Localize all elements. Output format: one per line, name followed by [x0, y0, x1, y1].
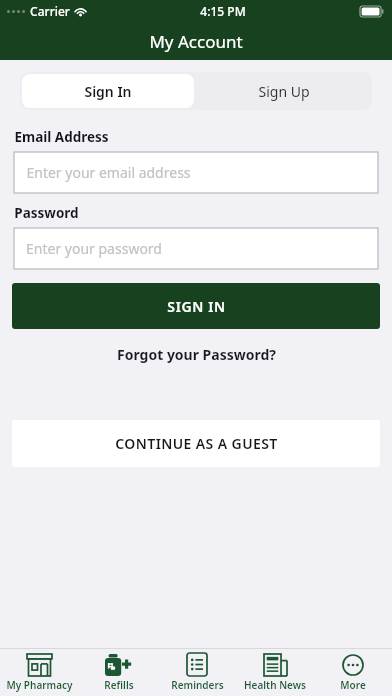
staticText: Sign In	[84, 82, 132, 101]
staticText: My Account	[149, 30, 243, 53]
staticText: CONTINUE AS A GUEST	[115, 434, 278, 453]
other: Reminders	[187, 653, 207, 676]
button[interactable]: SIGN IN	[12, 283, 380, 329]
button[interactable]: CONTINUE AS A GUEST	[12, 420, 380, 467]
button[interactable]: Refills	[79, 649, 158, 696]
staticText: My Pharmacy	[6, 678, 73, 692]
button[interactable]: More	[314, 649, 392, 696]
button[interactable]: Enter your password	[14, 228, 378, 269]
staticText: Email Address	[14, 128, 109, 146]
staticText: More	[340, 678, 366, 692]
staticText: Refills	[104, 678, 134, 692]
staticText: 4:15 PM	[200, 3, 246, 19]
button[interactable]: Sign Up	[196, 72, 372, 110]
staticText: Enter your password	[26, 239, 162, 258]
button[interactable]: Health News	[236, 649, 314, 696]
staticText: Reminders	[171, 678, 224, 692]
staticText: Password	[14, 204, 79, 222]
button[interactable]: Enter your email address	[14, 152, 378, 193]
button[interactable]: My Pharmacy	[0, 649, 79, 696]
button[interactable]: Sign In	[22, 74, 194, 108]
staticText: Health News	[244, 678, 306, 692]
staticText: Enter your email address	[26, 163, 191, 182]
button[interactable]: Forgot your Password?	[0, 345, 392, 364]
staticText: Forgot your Password?	[117, 345, 276, 364]
other: Health News	[264, 654, 287, 676]
other: My Pharmacy	[27, 654, 52, 676]
staticText: SIGN IN	[167, 297, 226, 316]
staticText: Carrier	[30, 3, 70, 19]
other: More	[342, 654, 364, 676]
staticText: Sign Up	[258, 82, 310, 101]
button[interactable]: Reminders	[158, 649, 236, 696]
other: Refills	[105, 654, 132, 676]
